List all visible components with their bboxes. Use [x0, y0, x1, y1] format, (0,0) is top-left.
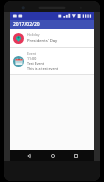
- staticText: 11:00: [27, 56, 37, 61]
- staticText: Holiday: [27, 32, 40, 37]
- staticText: Event: [27, 51, 37, 56]
- other: Event: [13, 56, 24, 67]
- staticText: Test Event: [27, 61, 45, 66]
- staticText: Presidents' Day: [27, 38, 58, 44]
- staticText: 2017/02/20: [13, 21, 40, 28]
- button[interactable]: Home: [47, 150, 58, 161]
- button[interactable]: Recent apps: [70, 150, 81, 161]
- button[interactable]: Event: [10, 48, 94, 74]
- other: Holiday: [13, 33, 24, 44]
- staticText: This is a test event: [27, 66, 58, 71]
- button[interactable]: Holiday: [10, 29, 94, 47]
- button[interactable]: Back: [23, 150, 34, 161]
